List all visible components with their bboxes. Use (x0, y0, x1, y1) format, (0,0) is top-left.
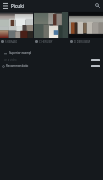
button[interactable]: C HERUBY (34, 12, 68, 45)
staticText: Recommendatio (6, 64, 29, 68)
button[interactable]: Menu (0, 0, 11, 11)
staticText: S KERABI (5, 40, 17, 44)
button[interactable]: D DERUBEM (69, 12, 103, 45)
staticText: C HERUBY (39, 40, 53, 44)
button[interactable]: Superior exampl (0, 49, 103, 57)
staticText: D DERUBEM (74, 40, 91, 44)
staticText: Superior exampl (9, 51, 32, 55)
button[interactable]: Search (92, 0, 103, 11)
button[interactable]: Recommendatio (0, 62, 103, 70)
button[interactable]: S KERABI (0, 12, 33, 45)
staticText: on a video (4, 58, 17, 62)
staticText: Picuki (11, 3, 24, 9)
